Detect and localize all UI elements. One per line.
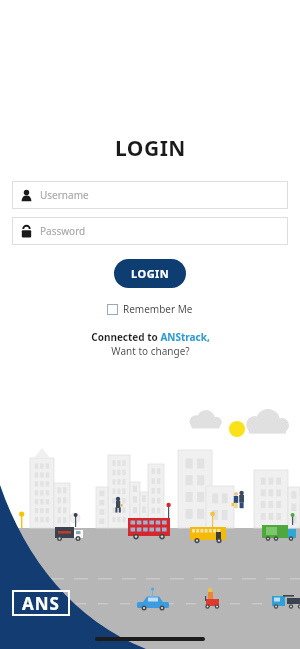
- staticText: ANS: [22, 592, 60, 615]
- staticText: Connected to ANStrack,: [91, 330, 210, 344]
- button[interactable]: ANS logo: [12, 590, 70, 616]
- staticText: LOGIN: [131, 266, 170, 281]
- button[interactable]: Want to change?: [111, 344, 190, 358]
- staticText: Password: [40, 224, 86, 238]
- button[interactable]: Remember Me: [103, 300, 197, 318]
- staticText: Remember Me: [123, 302, 193, 316]
- button[interactable]: LOGIN: [114, 259, 186, 288]
- button[interactable]: Password: [12, 217, 288, 245]
- staticText: LOGIN: [115, 134, 186, 163]
- staticText: Username: [40, 188, 89, 202]
- button[interactable]: Username: [12, 181, 288, 209]
